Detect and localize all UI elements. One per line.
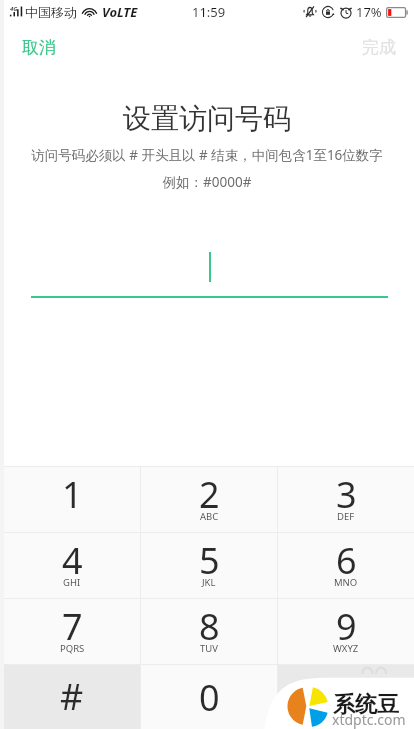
- button[interactable]: 2: [141, 467, 277, 532]
- staticText: 例如：#0000#: [0, 173, 414, 191]
- staticText: DEF: [337, 510, 355, 523]
- staticText: ABC: [200, 510, 219, 523]
- staticText: 5: [199, 536, 220, 585]
- button[interactable]: 取消: [0, 24, 72, 71]
- staticText: PQRS: [60, 642, 85, 655]
- button[interactable]: 0: [141, 665, 277, 729]
- staticText: 9: [336, 602, 357, 651]
- staticText: 系统豆: [333, 691, 399, 719]
- staticText: 访问号码必须以 # 开头且以 # 结束，中间包含1至16位数字: [0, 146, 414, 164]
- button[interactable]: 4: [4, 533, 140, 598]
- staticText: 取消: [22, 37, 56, 58]
- staticText: 1: [62, 470, 83, 519]
- staticText: xtdptc.com: [332, 710, 406, 729]
- staticText: 0: [199, 673, 220, 722]
- staticText: 3: [336, 470, 357, 519]
- button[interactable]: 1: [4, 467, 140, 532]
- button[interactable]: 7: [4, 599, 140, 664]
- staticText: 完成: [362, 37, 396, 58]
- button[interactable]: 6: [278, 533, 414, 598]
- staticText: 7: [62, 602, 83, 651]
- staticText: 17%: [356, 3, 382, 21]
- button[interactable]: 3: [278, 467, 414, 532]
- staticText: WXYZ: [333, 642, 359, 655]
- staticText: #: [60, 672, 84, 721]
- button[interactable]: 系统豆: [278, 665, 414, 729]
- staticText: TUV: [200, 642, 218, 655]
- staticText: JKL: [202, 576, 216, 589]
- button[interactable]: 8: [141, 599, 277, 664]
- staticText: 设置访问号码: [0, 101, 414, 136]
- button[interactable]: 完成: [346, 24, 414, 71]
- staticText: 11:59: [192, 3, 226, 21]
- button[interactable]: 9: [278, 599, 414, 664]
- staticText: 4G: [10, 5, 18, 13]
- button[interactable]: 5: [141, 533, 277, 598]
- staticText: 中国移动: [25, 4, 77, 20]
- button[interactable]: #: [4, 665, 140, 729]
- staticText: MNO: [334, 576, 358, 589]
- staticText: GHI: [63, 576, 81, 589]
- staticText: 4: [62, 536, 83, 585]
- staticText: VoLTE: [102, 3, 138, 21]
- staticText: 2: [199, 470, 220, 519]
- staticText: 8: [199, 602, 220, 651]
- staticText: 6: [336, 536, 357, 585]
